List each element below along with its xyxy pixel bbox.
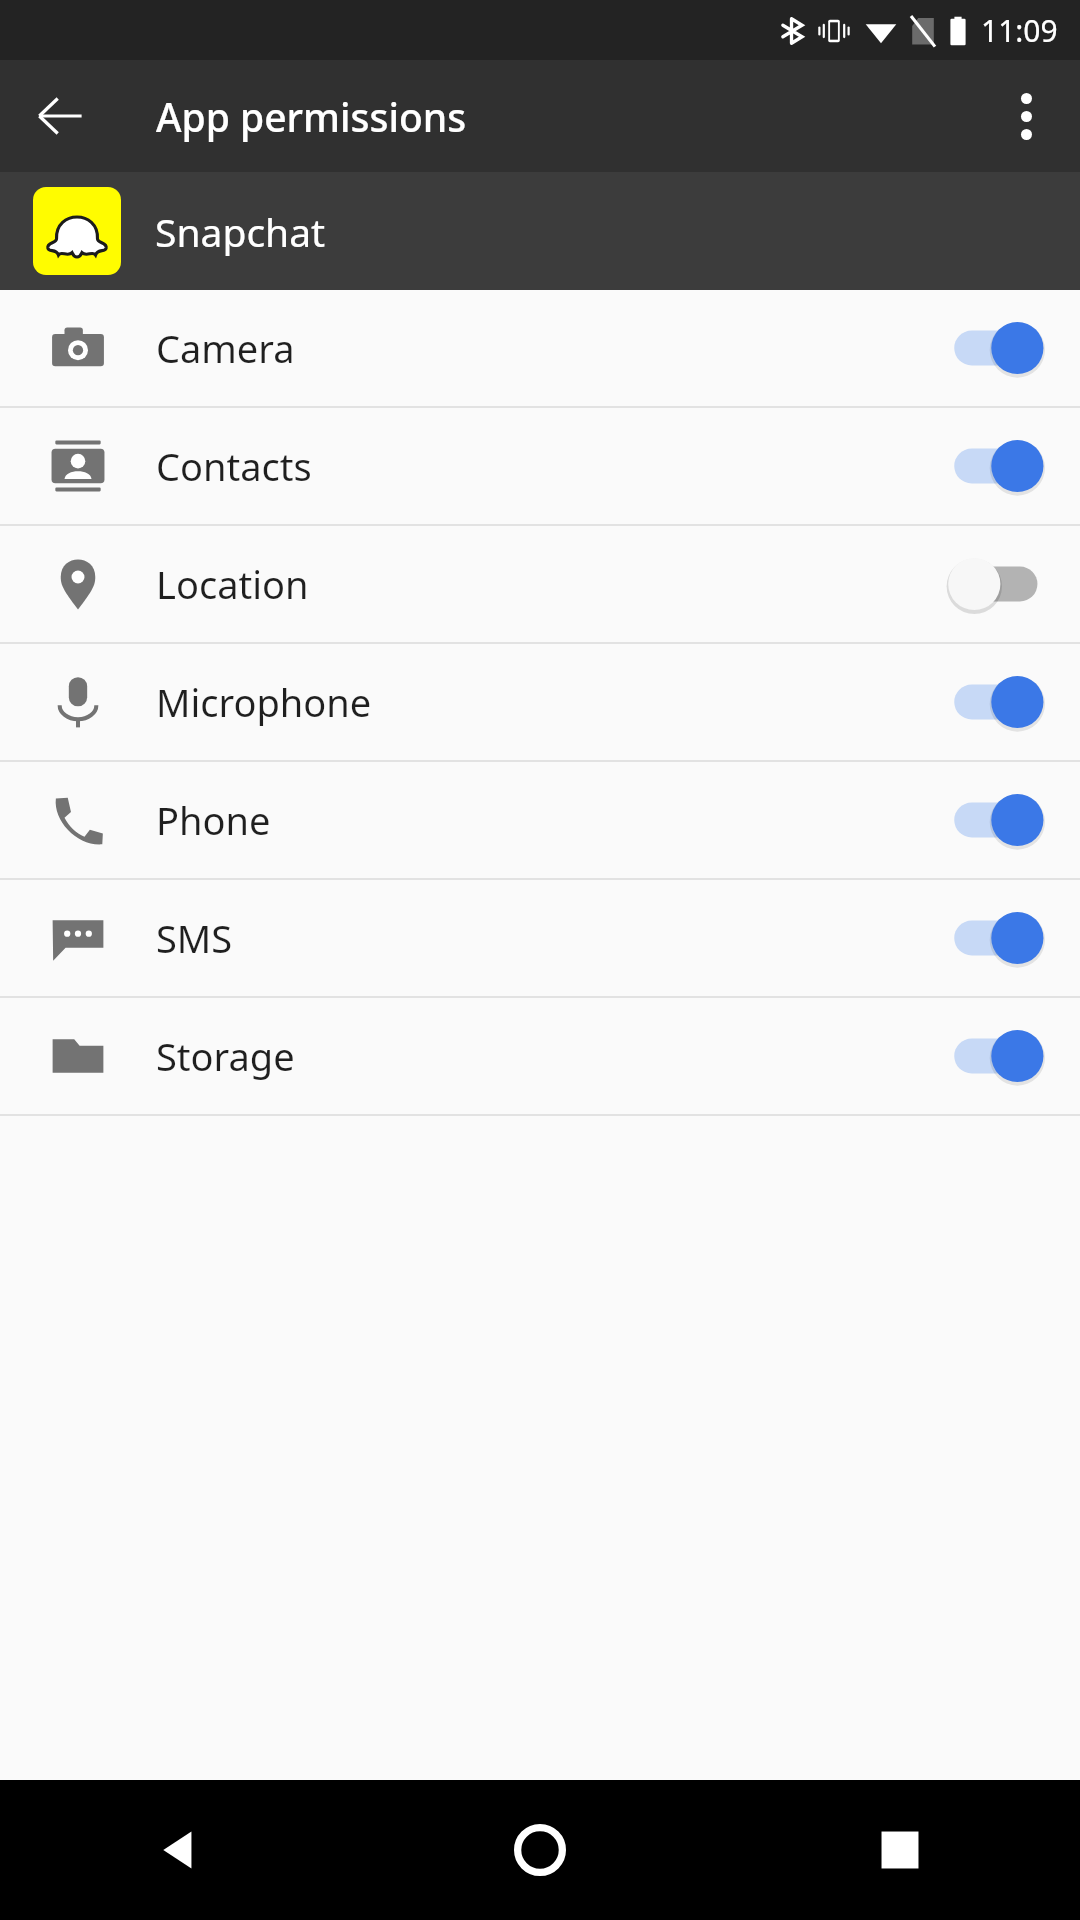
- button[interactable]: Home: [360, 1780, 720, 1920]
- button[interactable]: SMS: [0, 880, 1080, 996]
- staticText: Camera: [156, 322, 295, 374]
- button[interactable]: Location: [0, 526, 1080, 642]
- button[interactable]: Back: [0, 1780, 360, 1920]
- button[interactable]: Microphone: [0, 644, 1080, 760]
- button[interactable]: Navigate up: [22, 78, 98, 154]
- button[interactable]: Camera permission toggle: [920, 290, 1080, 406]
- button[interactable]: Microphone permission toggle: [920, 644, 1080, 760]
- staticText: Location: [156, 558, 309, 610]
- button[interactable]: Camera: [0, 290, 1080, 406]
- button[interactable]: More options: [988, 78, 1064, 154]
- button[interactable]: Contacts permission toggle: [920, 408, 1080, 524]
- button[interactable]: Phone: [0, 762, 1080, 878]
- button[interactable]: Storage permission toggle: [920, 998, 1080, 1114]
- staticText: Contacts: [156, 440, 312, 492]
- staticText: App permissions: [156, 90, 467, 143]
- staticText: 11:09: [981, 10, 1058, 51]
- button[interactable]: Storage: [0, 998, 1080, 1114]
- button[interactable]: Phone permission toggle: [920, 762, 1080, 878]
- button[interactable]: SMS permission toggle: [920, 880, 1080, 996]
- button[interactable]: Snapchat: [0, 172, 1080, 290]
- button[interactable]: Location permission toggle: [920, 526, 1080, 642]
- staticText: SMS: [156, 912, 233, 964]
- staticText: Microphone: [156, 676, 372, 728]
- button[interactable]: Recent apps: [720, 1780, 1080, 1920]
- staticText: Storage: [156, 1030, 295, 1082]
- staticText: Snapchat: [155, 205, 326, 258]
- staticText: Phone: [156, 794, 271, 846]
- button[interactable]: Contacts: [0, 408, 1080, 524]
